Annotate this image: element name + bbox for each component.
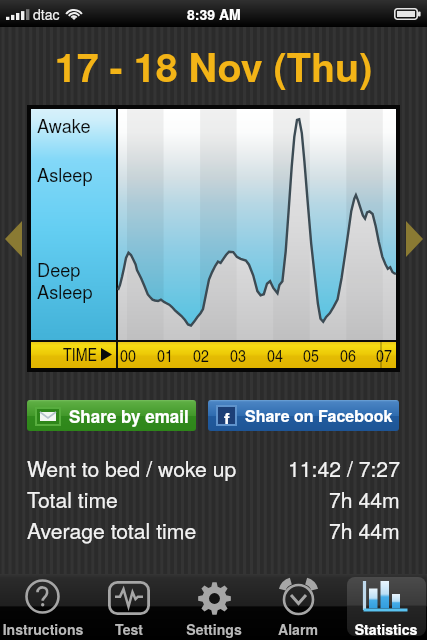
staticText: Statistics <box>336 619 427 639</box>
staticText: 02 <box>193 343 209 367</box>
button[interactable]: Next night <box>401 206 427 272</box>
staticText: 7h 44m <box>329 484 400 514</box>
staticText: Asleep <box>37 278 93 304</box>
button[interactable] <box>171 574 256 640</box>
button[interactable] <box>0 574 85 640</box>
button[interactable] <box>256 574 341 640</box>
staticText: Instructions <box>0 619 93 639</box>
staticText: 01 <box>157 343 173 367</box>
button[interactable]: Previous night <box>0 206 26 272</box>
staticText: Test <box>79 619 179 639</box>
staticText: dtac <box>33 4 60 24</box>
button[interactable] <box>86 574 171 640</box>
staticText: 04 <box>267 343 283 367</box>
staticText: Deep <box>37 256 81 282</box>
staticText: Total time <box>27 484 118 514</box>
staticText: Asleep <box>37 161 93 187</box>
staticText: 8:39 AM <box>187 4 241 24</box>
staticText: 07 <box>376 343 392 367</box>
staticText: TIME <box>63 342 98 366</box>
staticText: 7h 44m <box>329 515 400 545</box>
staticText: Settings <box>164 619 264 639</box>
staticText: Awake <box>37 112 91 138</box>
staticText: 03 <box>230 343 246 367</box>
button[interactable] <box>344 574 427 640</box>
staticText: Share by email <box>69 404 189 428</box>
staticText: Average total time <box>27 515 197 545</box>
button[interactable]: f <box>208 400 399 431</box>
staticText: Went to bed / woke up <box>27 453 237 483</box>
staticText: 00 <box>120 343 136 367</box>
staticText: 17 - 18 Nov (Thu) <box>0 38 427 95</box>
staticText: 05 <box>303 343 319 367</box>
staticText: Share on Facebook <box>245 404 393 427</box>
button[interactable]: Share by email <box>27 400 196 431</box>
staticText: 06 <box>340 343 356 367</box>
staticText: 11:42 / 7:27 <box>288 453 400 483</box>
staticText: Alarm <box>248 619 348 639</box>
staticText: f <box>224 407 230 424</box>
